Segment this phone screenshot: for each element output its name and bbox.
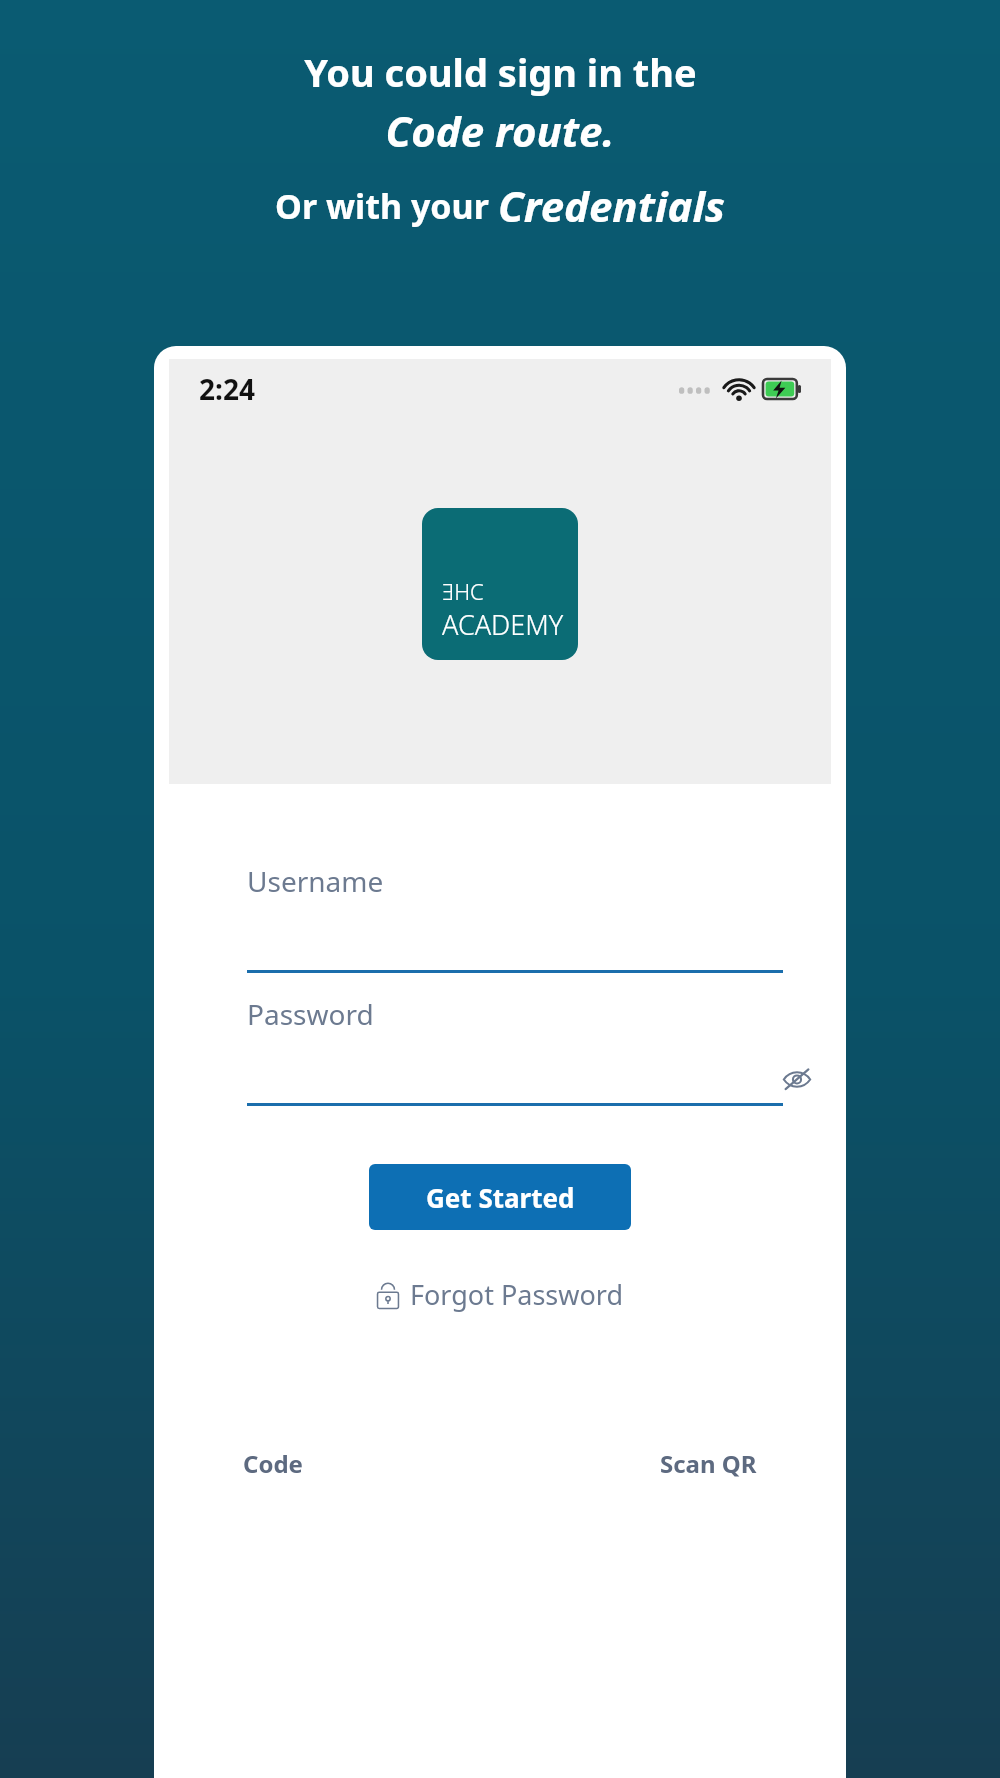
staticText: Username: [247, 862, 384, 900]
button[interactable]: Forgot Password: [364, 1270, 636, 1319]
staticText: Or with your: [275, 183, 498, 229]
button[interactable]: Code: [229, 1437, 317, 1490]
staticText: Code route.: [385, 102, 615, 159]
staticText: ƎHC: [442, 576, 484, 606]
staticText: Code: [243, 1447, 303, 1480]
staticText: Password: [247, 995, 374, 1033]
staticText: You could sign in the: [304, 46, 697, 98]
staticText: Forgot Password: [410, 1276, 624, 1313]
button[interactable]: Get Started: [369, 1164, 631, 1230]
staticText: 2:24: [199, 370, 255, 408]
staticText: ACADEMY: [442, 606, 564, 643]
button[interactable]: Show password: [775, 1057, 819, 1101]
staticText: Get Started: [426, 1180, 575, 1215]
button[interactable]: Scan QR: [646, 1437, 771, 1490]
staticText: Scan QR: [660, 1447, 757, 1480]
staticText: Credentials: [498, 177, 725, 234]
